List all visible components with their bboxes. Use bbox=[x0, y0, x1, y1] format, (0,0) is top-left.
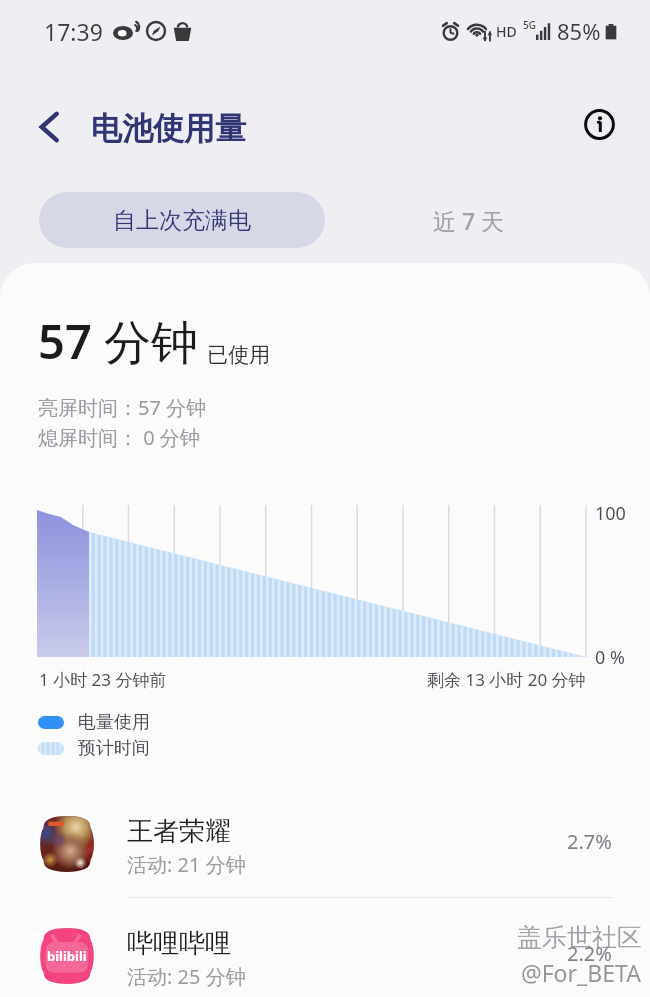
button[interactable]: Info bbox=[575, 100, 623, 148]
staticText: 剩余 13 小时 20 分钟 bbox=[427, 668, 586, 691]
staticText: 王者荣耀 bbox=[127, 815, 231, 848]
staticText: 2.2% bbox=[567, 940, 612, 967]
staticText: 57 分钟 bbox=[38, 309, 198, 373]
staticText: 1 小时 23 分钟前 bbox=[39, 668, 167, 691]
staticText: 活动: 25 分钟 bbox=[127, 963, 246, 990]
staticText: 0 % bbox=[595, 645, 625, 670]
staticText: 100 bbox=[595, 501, 626, 526]
staticText: @For_BETA bbox=[521, 957, 641, 988]
staticText: 近 7 天 bbox=[433, 205, 505, 236]
staticText: 活动: 21 分钟 bbox=[127, 851, 246, 878]
staticText: 电量使用 bbox=[78, 711, 150, 734]
button[interactable]: Back bbox=[25, 103, 73, 151]
staticText: 亮屏时间：57 分钟 bbox=[38, 394, 207, 421]
button[interactable]: 王者荣耀 bbox=[0, 788, 650, 900]
staticText: 2.7% bbox=[567, 828, 612, 855]
staticText: 5G bbox=[523, 18, 536, 32]
staticText: 电池使用量 bbox=[91, 109, 246, 148]
staticText: 预计时间 bbox=[78, 737, 150, 760]
staticText: 熄屏时间： 0 分钟 bbox=[38, 424, 200, 451]
staticText: 85% bbox=[557, 16, 601, 46]
staticText: 自上次充满电 bbox=[113, 206, 251, 235]
staticText: 17:39 bbox=[44, 16, 103, 47]
button[interactable]: bilibili bbox=[0, 900, 650, 997]
staticText: 盖乐世社区 bbox=[517, 922, 642, 953]
staticText: bilibili bbox=[47, 947, 87, 965]
button[interactable]: 自上次充满电 bbox=[39, 192, 325, 248]
staticText: 哔哩哔哩 bbox=[127, 927, 231, 960]
button[interactable]: 近 7 天 bbox=[325, 192, 612, 248]
staticText: HD bbox=[496, 22, 517, 41]
staticText: 已使用 bbox=[207, 342, 270, 368]
